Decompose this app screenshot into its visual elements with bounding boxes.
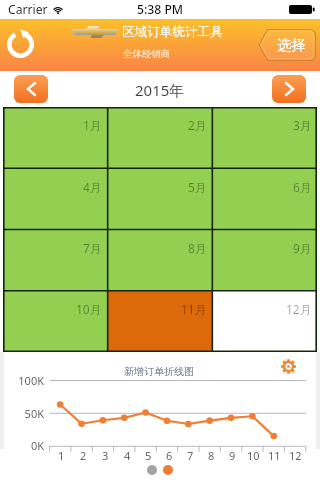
staticText: 8月 [188,240,207,256]
staticText: 0K [30,438,44,453]
staticText: 10 [247,448,260,463]
staticText: 6 [166,448,173,463]
button[interactable]: 5月 [107,169,212,230]
staticText: 100K [18,373,44,388]
button[interactable]: 4月 [3,169,107,230]
staticText: 2015年 [135,80,185,100]
staticText: 5 [145,448,152,463]
button[interactable]: 12月 [212,291,317,352]
button[interactable]: Next year [272,75,306,103]
button[interactable]: 3月 [212,107,317,169]
staticText: 11 [268,448,281,463]
staticText: 7 [187,448,194,463]
staticText: 1月 [83,117,102,133]
staticText: 全体经销商 [123,48,170,60]
staticText: 5:38 PM [137,1,184,18]
staticText: 2 [80,448,87,463]
staticText: 12 [289,448,302,463]
button[interactable]: 2月 [107,107,212,169]
button[interactable]: Settings [277,355,300,378]
staticText: 1 [58,448,65,463]
button[interactable]: Previous year [14,75,48,103]
staticText: 9 [229,448,236,463]
staticText: 8 [208,448,215,463]
staticText: 3 [102,448,109,463]
staticText: 区域订单统计工具 [122,24,223,40]
button[interactable]: 6月 [212,169,317,230]
button[interactable]: Page 1 [147,465,157,475]
staticText: 7月 [83,240,102,256]
staticText: 50K [24,406,44,421]
staticText: 2月 [188,117,207,133]
staticText: 4月 [83,179,102,195]
staticText: 选择 [277,36,306,54]
staticText: 11月 [181,301,207,317]
button[interactable]: 8月 [107,230,212,291]
staticText: 9月 [293,240,312,256]
button[interactable]: 9月 [212,230,317,291]
staticText: 6月 [293,179,312,195]
button[interactable]: Page 2 [163,465,173,475]
button[interactable]: 11月 [107,291,212,352]
staticText: Carrier [8,1,48,18]
button[interactable]: 选择 [258,29,316,61]
staticText: 10月 [76,301,102,317]
button[interactable]: 10月 [3,291,107,352]
button[interactable]: 7月 [3,230,107,291]
staticText: 3月 [293,117,312,133]
staticText: 新增订单折线图 [124,365,194,378]
staticText: 12月 [286,301,312,317]
button[interactable]: 1月 [3,107,107,169]
button[interactable]: Refresh [3,27,37,61]
staticText: 4 [124,448,131,463]
staticText: 5月 [188,179,207,195]
